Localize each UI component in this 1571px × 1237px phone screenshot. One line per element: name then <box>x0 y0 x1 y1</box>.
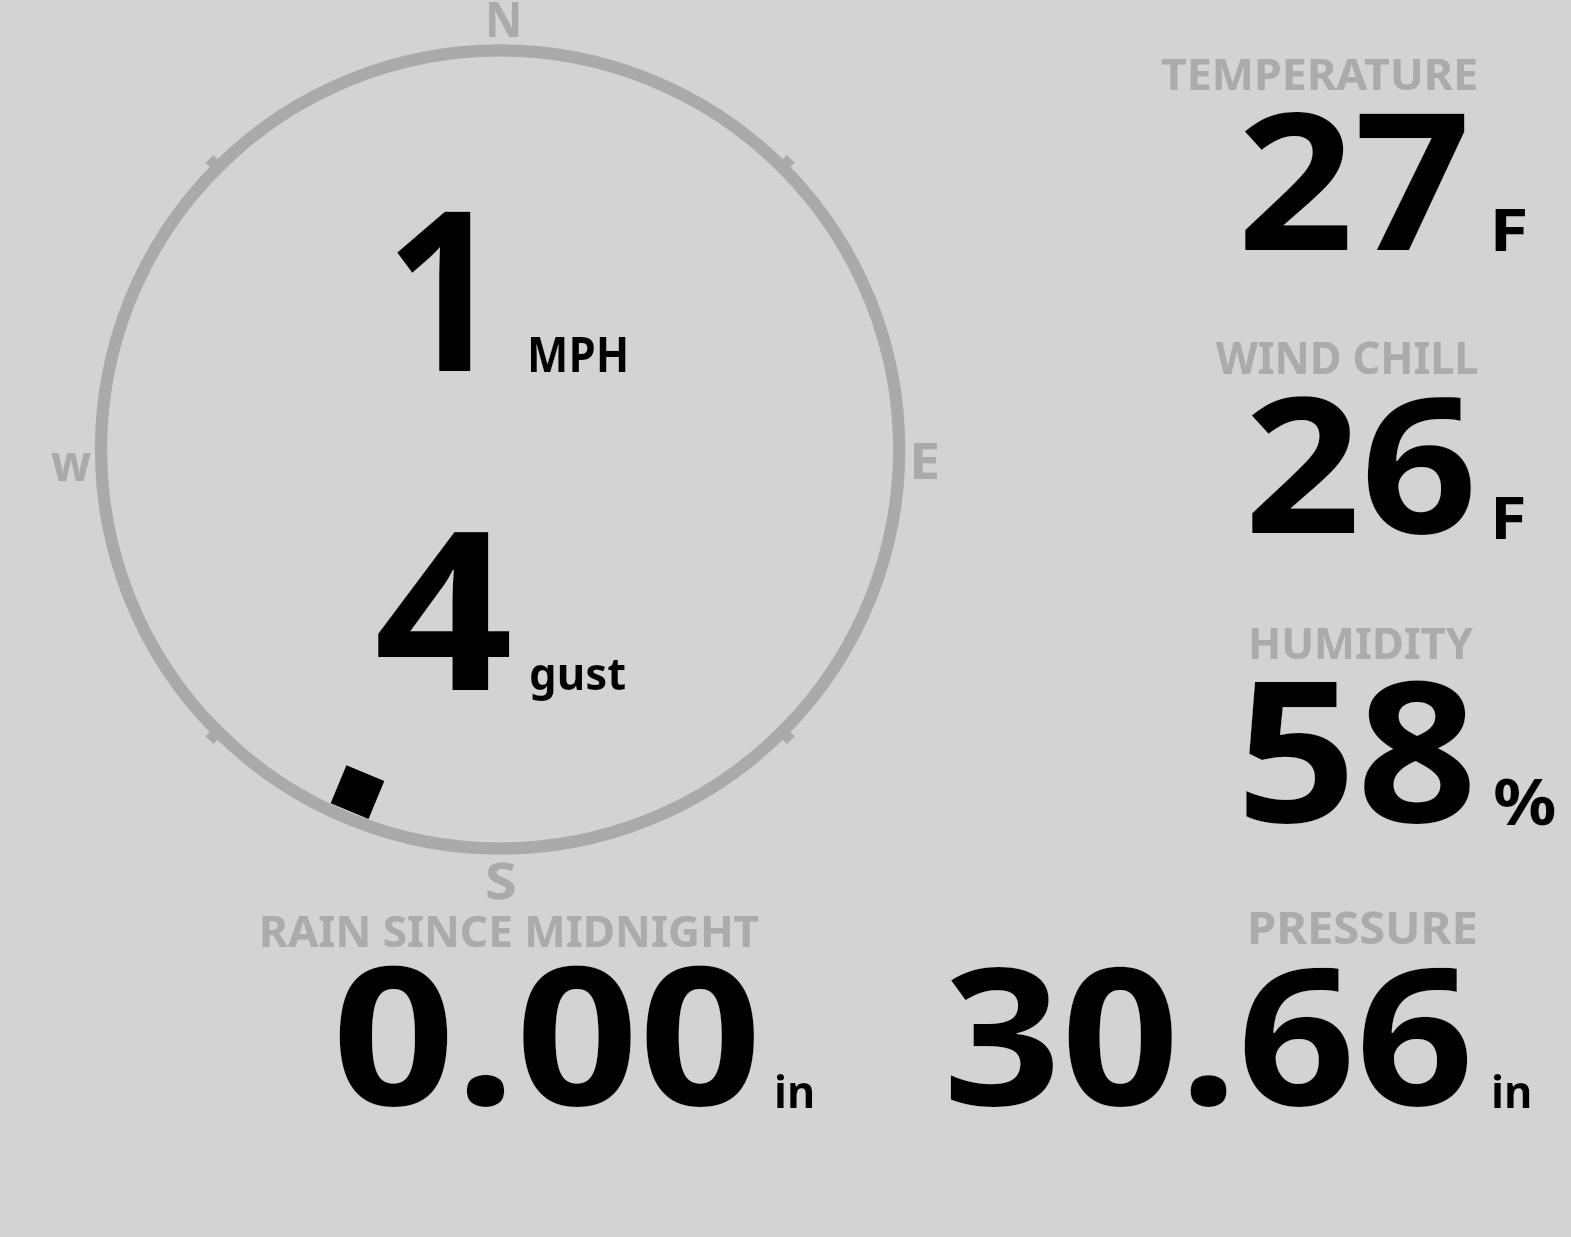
button[interactable]: Temperature 27 degrees F <box>1150 40 1571 305</box>
staticText: 26 <box>1244 332 1478 588</box>
staticText: w <box>51 427 92 496</box>
staticText: F <box>1489 188 1529 268</box>
staticText: 27 <box>1237 47 1472 306</box>
button[interactable]: Humidity 58 percent <box>1150 610 1571 875</box>
button[interactable]: Wind chill 26 degrees F <box>1150 325 1571 590</box>
staticText: 30.66 <box>943 901 1475 1161</box>
staticText: RAIN SINCE MIDNIGHT <box>259 901 759 960</box>
staticText: gust <box>529 642 627 703</box>
staticText: MPH <box>527 320 630 386</box>
staticText: PRESSURE <box>1247 896 1478 958</box>
staticText: HUMIDITY <box>1248 612 1473 672</box>
staticText: 0.00 <box>332 900 762 1162</box>
staticText: % <box>1493 757 1557 844</box>
button[interactable]: Rain since midnight 0.00 inches <box>240 896 840 1136</box>
staticText: E <box>909 426 940 494</box>
button[interactable]: Wind speed and direction <box>42 0 960 906</box>
staticText: WIND CHILL <box>1216 327 1479 387</box>
staticText: 4 <box>374 453 513 755</box>
button[interactable]: Pressure 30.66 inches <box>900 896 1571 1136</box>
staticText: 1 <box>385 133 504 436</box>
staticText: F <box>1490 476 1528 556</box>
staticText: in <box>774 1060 815 1121</box>
staticText: S <box>485 845 517 914</box>
staticText: N <box>485 0 523 51</box>
staticText: 58 <box>1236 614 1477 879</box>
staticText: TEMPERATURE <box>1161 43 1479 103</box>
staticText: in <box>1491 1060 1533 1121</box>
